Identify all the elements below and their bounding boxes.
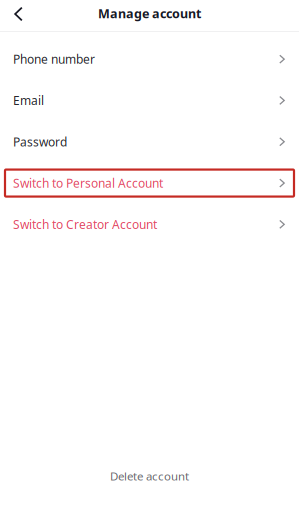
button[interactable]: Switch to Creator Account bbox=[0, 204, 299, 245]
staticText: Email bbox=[13, 92, 44, 109]
button[interactable]: Password bbox=[0, 121, 299, 162]
staticText: Delete account bbox=[110, 468, 189, 484]
button[interactable]: Email bbox=[0, 80, 299, 121]
button[interactable]: Phone number bbox=[0, 38, 299, 80]
staticText: Phone number bbox=[13, 51, 95, 67]
staticText: Password bbox=[13, 134, 67, 150]
button[interactable]: Switch to Personal Account bbox=[0, 162, 299, 204]
staticText: Switch to Personal Account bbox=[13, 175, 163, 191]
staticText: Manage account bbox=[98, 5, 201, 22]
button[interactable]: Back bbox=[0, 0, 37, 28]
button[interactable]: Delete account bbox=[110, 462, 189, 490]
staticText: Switch to Creator Account bbox=[13, 216, 157, 232]
